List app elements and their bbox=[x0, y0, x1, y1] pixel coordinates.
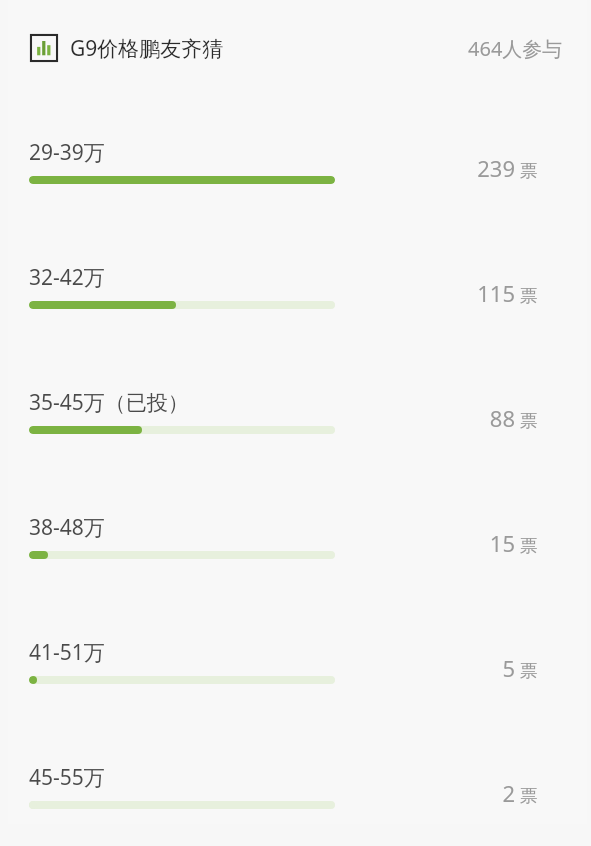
staticText: G9价格鹏友齐猜 bbox=[70, 34, 224, 63]
staticText: 票 bbox=[515, 533, 538, 558]
staticText: 41-51万 bbox=[29, 638, 105, 667]
staticText: 票 bbox=[515, 283, 538, 308]
staticText: 38-48万 bbox=[29, 513, 105, 542]
staticText: 29-39万 bbox=[29, 138, 105, 167]
staticText: 45-55万 bbox=[29, 763, 105, 792]
button[interactable]: 32-42万 bbox=[0, 250, 591, 375]
button[interactable]: 35-45万（已投） bbox=[0, 375, 591, 500]
staticText: 239 bbox=[477, 153, 515, 183]
button[interactable]: 41-51万 bbox=[0, 625, 591, 750]
staticText: 88 bbox=[489, 403, 515, 433]
button[interactable]: 38-48万 bbox=[0, 500, 591, 625]
other: Poll bbox=[30, 34, 58, 62]
staticText: 32-42万 bbox=[29, 263, 105, 292]
staticText: 35-45万（已投） bbox=[29, 388, 189, 417]
button[interactable]: Poll bbox=[0, 0, 591, 96]
staticText: 5 bbox=[502, 653, 515, 683]
staticText: 票 bbox=[515, 658, 538, 683]
staticText: 15 bbox=[489, 528, 515, 558]
button[interactable]: 29-39万 bbox=[0, 125, 591, 250]
staticText: 票 bbox=[515, 158, 538, 183]
staticText: 464人参与 bbox=[468, 35, 563, 62]
staticText: 票 bbox=[515, 408, 538, 433]
staticText: 115 bbox=[477, 278, 515, 308]
button[interactable]: 45-55万 bbox=[0, 750, 591, 846]
staticText: 2 bbox=[502, 778, 515, 808]
staticText: 票 bbox=[515, 783, 538, 808]
